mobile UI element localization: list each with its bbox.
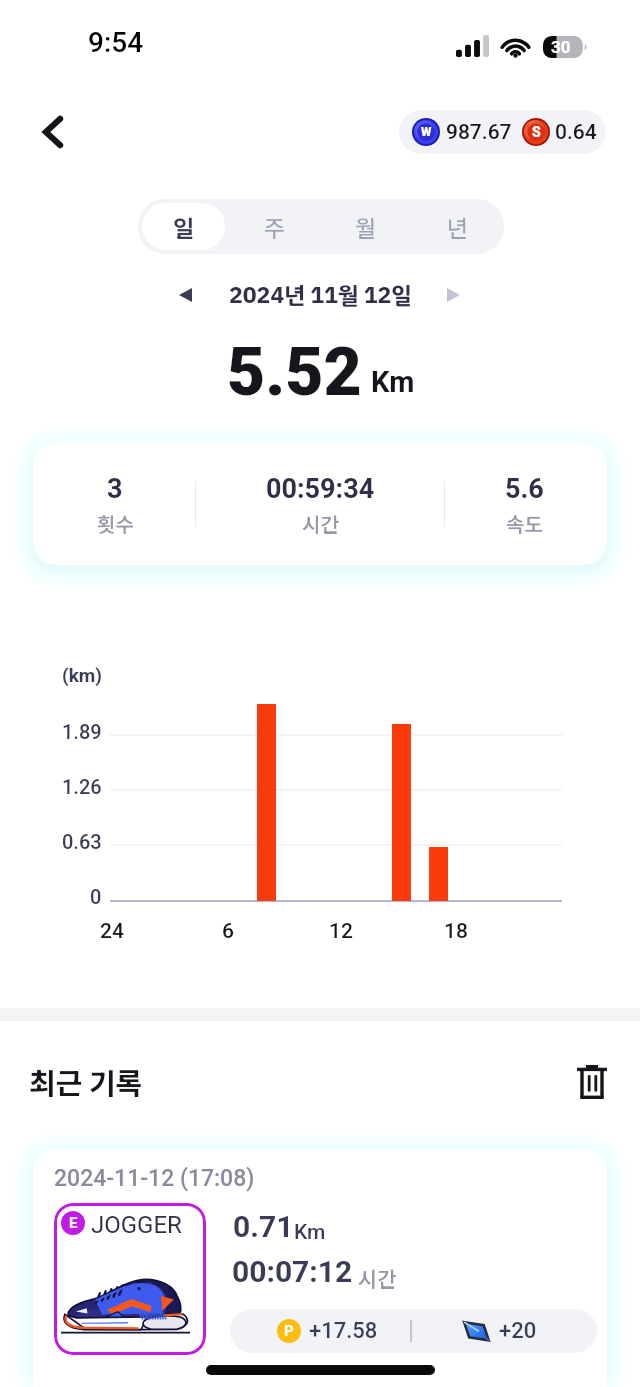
staticText: 년 [447, 210, 469, 243]
staticText: 00:59:34 [266, 473, 375, 505]
staticText: Km [371, 365, 415, 399]
staticText: 주 [264, 210, 286, 243]
staticText: 30 [551, 37, 571, 57]
staticText: 2024-11-12 (17:08) [54, 1165, 255, 1192]
button[interactable]: Back [26, 105, 80, 159]
staticText: JOGGER [91, 1211, 182, 1239]
staticText: (km) [62, 664, 102, 686]
staticText: 00:07:12 [232, 1254, 353, 1289]
staticText: 0.71 [233, 1209, 294, 1244]
staticText: 5.6 [505, 473, 544, 505]
staticText: 12 [329, 919, 353, 944]
staticText: +17.58 [309, 1318, 378, 1344]
staticText: 시간 [302, 509, 339, 537]
button[interactable]: W [399, 110, 606, 154]
staticText: +20 [499, 1318, 537, 1344]
staticText: 987.67 [446, 120, 512, 145]
button[interactable]: 5.6 [454, 473, 594, 537]
button[interactable]: 00:59:34 [250, 473, 390, 537]
staticText: 0.64 [555, 120, 597, 145]
staticText: 속도 [506, 509, 543, 537]
staticText: 5.52 [227, 334, 362, 411]
staticText: Km [294, 1220, 326, 1245]
staticText: 6 [222, 919, 234, 944]
button[interactable]: 년 [416, 203, 500, 250]
staticText: S [532, 124, 541, 140]
staticText: 18 [444, 919, 468, 944]
staticText: 3 [107, 473, 123, 505]
button[interactable]: Next day [431, 273, 475, 317]
staticText: 일 [173, 210, 195, 243]
button[interactable]: Delete [566, 1056, 618, 1108]
staticText: 횟수 [97, 509, 134, 537]
staticText: 1.26 [62, 775, 102, 798]
staticText: 24 [100, 919, 124, 944]
button[interactable]: 3 [45, 473, 185, 537]
staticText: 최근 기록 [29, 1060, 143, 1102]
staticText: P [284, 1322, 294, 1340]
staticText: 0.63 [62, 830, 102, 853]
staticText: 1.89 [62, 720, 102, 743]
staticText: 시간 [358, 1263, 397, 1293]
button[interactable]: 일 [142, 203, 225, 250]
button[interactable]: 주 [233, 203, 316, 250]
staticText: 0 [90, 885, 102, 908]
button[interactable]: 2024-11-12 (17:08) [33, 1149, 607, 1387]
button[interactable]: Previous day [163, 273, 207, 317]
staticText: E [69, 1214, 78, 1232]
staticText: 월 [355, 210, 377, 243]
button[interactable]: 월 [324, 203, 408, 250]
staticText: 2024년 11월 12일 [229, 278, 412, 313]
button[interactable]: P [230, 1309, 597, 1353]
staticText: W [421, 125, 432, 139]
staticText: 9:54 [88, 26, 144, 59]
